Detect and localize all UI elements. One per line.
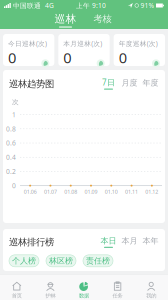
button[interactable]: 巡林 [52,12,78,27]
button[interactable]: 月度 [119,78,140,90]
staticText: 01.07 [44,188,57,195]
staticText: 我的 [146,292,156,299]
staticText: 本年 [142,236,158,246]
staticText: 首页 [12,292,22,299]
staticText: 1 [12,110,16,119]
staticText: 任务 [113,292,123,299]
button[interactable]: 责任榜 [83,255,113,267]
staticText: 0 [12,181,16,190]
button[interactable]: 我的 [134,274,168,300]
staticText: 护林 [45,292,55,299]
staticText: 0.4 [6,153,16,162]
staticText: 01.09 [84,188,97,195]
staticText: 考核 [93,13,111,25]
staticText: 01.10 [105,188,118,195]
staticText: 月度 [121,78,137,88]
button[interactable]: 首页 [0,274,34,300]
staticText: 巡林 [54,12,76,25]
staticText: 年度巡林(次) [119,39,158,48]
staticText: 个人榜 [12,256,36,266]
staticText: 林区榜 [49,256,73,266]
staticText: 本月巡林(次) [63,39,102,48]
staticText: 01.06 [24,188,37,195]
staticText: 01.11 [125,188,138,195]
button[interactable]: 护林 [34,274,67,300]
staticText: 数据 [79,292,89,299]
staticText: 今日巡林(次) [8,39,47,48]
button[interactable]: 个人榜 [9,255,39,267]
button[interactable]: 考核 [89,13,115,27]
button[interactable]: 7日 [98,77,119,90]
staticText: 中国联通 4G [11,1,54,10]
staticText: 巡林排行榜 [9,236,54,248]
button[interactable]: 本日 [98,236,119,248]
staticText: 0 [119,48,127,67]
staticText: 上午 9:10 [76,1,106,10]
staticText: 0.2 [6,167,16,176]
staticText: 巡林趋势图 [9,78,54,90]
staticText: 91% [138,1,154,10]
button[interactable]: 数据 [67,274,101,300]
staticText: 0.6 [6,139,16,147]
staticText: 0 [8,48,16,67]
button[interactable]: 任务 [101,274,134,300]
staticText: 01.12 [145,188,158,195]
staticText: 本日 [100,236,116,246]
button[interactable]: 林区榜 [46,255,76,267]
staticText: 本月 [121,236,137,246]
staticText: 0 [63,48,71,67]
staticText: 01.08 [64,188,77,195]
button[interactable]: 本月 [119,236,140,248]
button[interactable]: 年度 [140,78,161,90]
staticText: 年度 [142,78,158,88]
staticText: 次 [12,98,19,106]
button[interactable]: 本年 [140,236,161,248]
staticText: 责任榜 [86,256,110,266]
staticText: 7日 [102,77,115,88]
staticText: 0.8 [6,124,16,133]
